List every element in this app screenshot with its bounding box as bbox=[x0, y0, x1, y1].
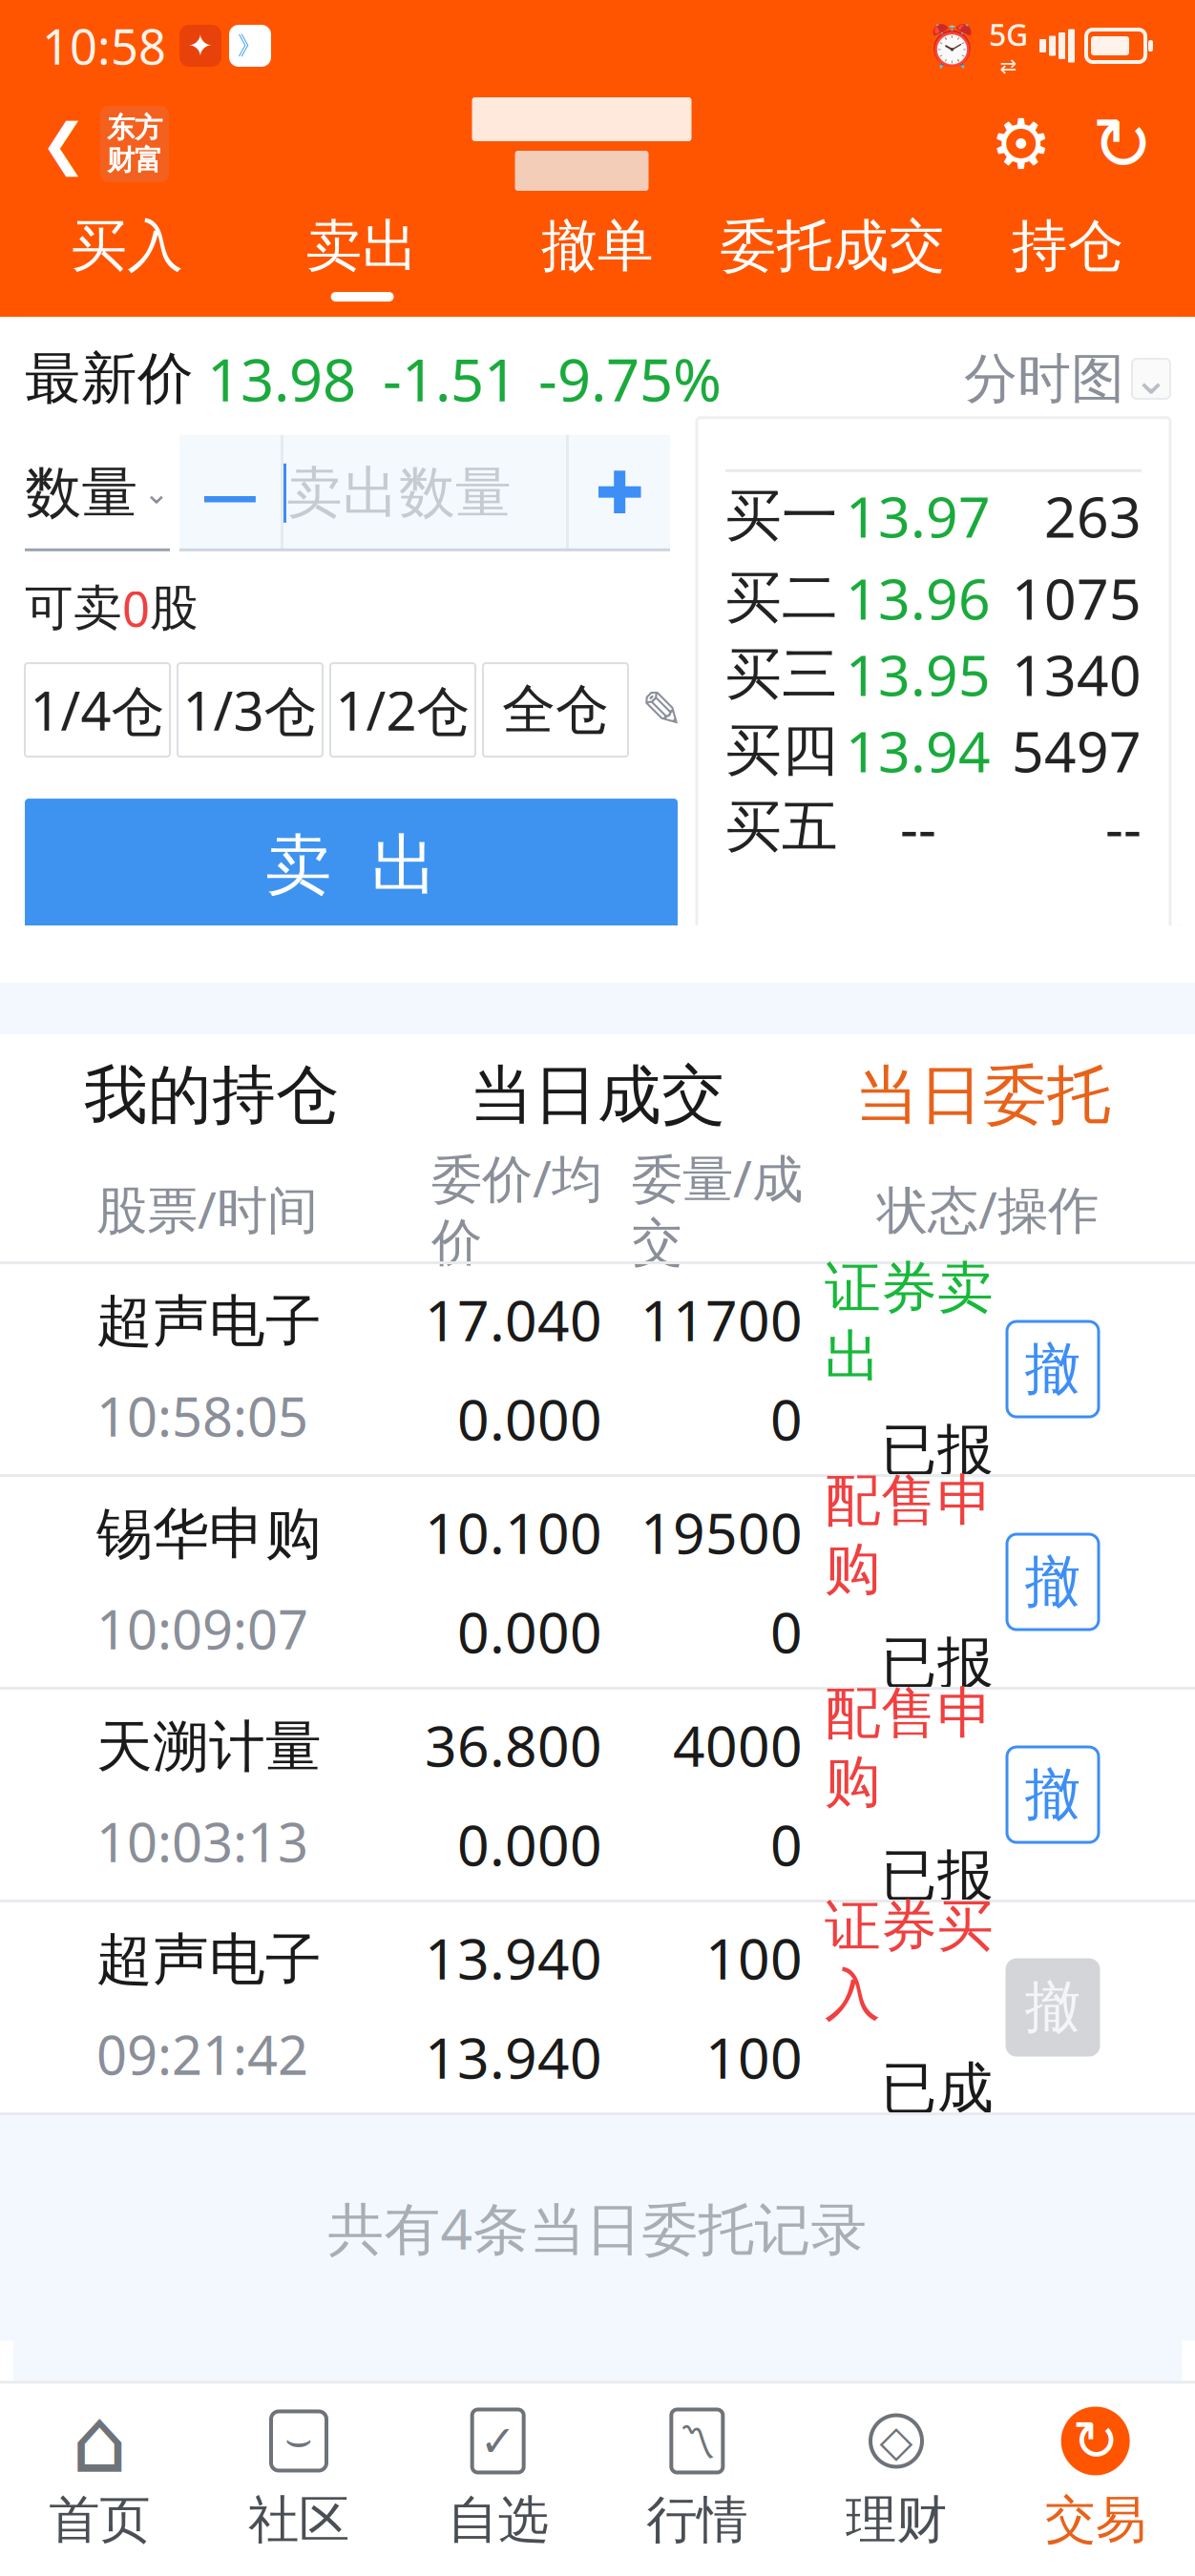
staticText: 10:58 bbox=[42, 14, 166, 78]
staticText: 天溯计量 bbox=[96, 1712, 322, 1781]
button[interactable]: 卖出 bbox=[245, 197, 480, 302]
staticText: 1075 bbox=[1012, 561, 1142, 635]
staticText: 社区 bbox=[248, 2489, 349, 2551]
staticText: 东方 bbox=[107, 111, 162, 145]
staticText: -- bbox=[900, 790, 936, 864]
button[interactable]: 数量 bbox=[25, 435, 170, 551]
staticText: 撤 bbox=[1025, 1335, 1081, 1404]
staticText: 财富 bbox=[107, 143, 162, 177]
button[interactable]: 卖 出 bbox=[25, 799, 678, 932]
staticText: 自选 bbox=[447, 2489, 549, 2551]
button[interactable]: ⌣ bbox=[199, 2384, 398, 2576]
button[interactable]: 设置 bbox=[987, 92, 1056, 197]
staticText: 我的持仓 bbox=[84, 1056, 340, 1134]
staticText: 分时图 bbox=[964, 346, 1124, 412]
staticText: 13.94 bbox=[846, 713, 991, 788]
button[interactable]: 卖出数量 bbox=[283, 435, 566, 551]
button[interactable]: 撤 bbox=[1007, 1960, 1099, 2055]
staticText: 行情 bbox=[646, 2489, 748, 2551]
staticText: 13.96 bbox=[846, 561, 991, 635]
button[interactable]: 撤单 bbox=[480, 197, 715, 302]
staticText: 配售申购 bbox=[825, 1466, 994, 1604]
staticText: 买五 bbox=[725, 793, 838, 861]
staticText: ✎ bbox=[641, 681, 684, 739]
button[interactable]: 撤 bbox=[1007, 1321, 1099, 1417]
button[interactable]: 买入 bbox=[10, 197, 245, 302]
button[interactable]: 委托成交 bbox=[715, 197, 950, 302]
staticText: -- bbox=[1105, 790, 1142, 864]
staticText: 已成 bbox=[881, 2054, 994, 2123]
button[interactable]: ↻ bbox=[996, 2384, 1195, 2576]
staticText: 0.000 bbox=[457, 1807, 602, 1881]
staticText: ⌄ bbox=[144, 476, 169, 510]
button[interactable]: 当日委托 bbox=[790, 1034, 1176, 1156]
button[interactable]: 我的持仓 bbox=[19, 1034, 405, 1156]
button[interactable]: 减少数量 bbox=[179, 435, 281, 551]
staticText: 0 bbox=[770, 1807, 803, 1881]
staticText: 10.100 bbox=[425, 1495, 602, 1570]
staticText: 撤单 bbox=[541, 212, 654, 281]
staticText: 1/4仓 bbox=[30, 674, 165, 745]
staticText: 当日委托 bbox=[855, 1056, 1111, 1134]
button[interactable]: 撤 bbox=[1007, 1747, 1099, 1842]
staticText: 买一 bbox=[725, 482, 838, 550]
staticText: 19500 bbox=[640, 1495, 803, 1570]
staticText: -9.75% bbox=[538, 340, 722, 418]
staticText: 10:09:07 bbox=[96, 1593, 308, 1664]
staticText: 证券买入 bbox=[825, 1892, 994, 2029]
staticText: ✦ bbox=[188, 28, 213, 63]
staticText: ⌣ bbox=[284, 2420, 313, 2462]
staticText: 已报 bbox=[881, 1841, 994, 1910]
staticText: 委托成交 bbox=[720, 212, 945, 281]
button[interactable]: ⌂ bbox=[0, 2384, 199, 2576]
staticText: 4000 bbox=[673, 1708, 803, 1782]
button[interactable]: 1/3仓 bbox=[178, 663, 323, 757]
staticText: 证券卖出 bbox=[825, 1254, 994, 1391]
staticText: ◇ bbox=[880, 2416, 913, 2466]
staticText: 委价/均价 bbox=[431, 1144, 602, 1274]
button[interactable]: 〽 bbox=[597, 2384, 797, 2576]
button[interactable]: 分时图 bbox=[964, 346, 1170, 412]
button[interactable]: 1/2仓 bbox=[330, 663, 475, 757]
staticText: 股票/时间 bbox=[96, 1175, 318, 1243]
staticText: 1340 bbox=[1012, 637, 1142, 711]
staticText: 100 bbox=[705, 1921, 803, 1995]
staticText: 10:03:13 bbox=[96, 1806, 308, 1877]
staticText: 13.98 bbox=[207, 340, 356, 418]
staticText: 当日成交 bbox=[470, 1056, 725, 1134]
staticText: 1/2仓 bbox=[335, 674, 470, 745]
button[interactable]: 返回 东方财富 bbox=[32, 92, 177, 197]
staticText: 撤 bbox=[1025, 1973, 1081, 2042]
button[interactable]: ✓ bbox=[398, 2384, 597, 2576]
staticText: 可卖 bbox=[25, 578, 122, 638]
staticText: 状态/操作 bbox=[877, 1175, 1099, 1243]
staticText: 0 bbox=[770, 1594, 803, 1669]
button[interactable]: 当日成交 bbox=[405, 1034, 790, 1156]
staticText: 买三 bbox=[725, 640, 838, 709]
button[interactable]: 编辑仓位 bbox=[636, 663, 689, 757]
button[interactable]: ◇ bbox=[797, 2384, 996, 2576]
staticText: 5G bbox=[989, 14, 1028, 54]
staticText: 10:58:05 bbox=[96, 1380, 308, 1451]
staticText: 〽 bbox=[678, 2422, 716, 2460]
button[interactable]: 持仓 bbox=[950, 197, 1185, 302]
staticText: ⏰ bbox=[927, 23, 977, 69]
staticText: 持仓 bbox=[1012, 212, 1124, 281]
staticText: 数量 bbox=[25, 459, 138, 528]
staticText: 超声电子 bbox=[96, 1925, 322, 1994]
staticText: 撤 bbox=[1025, 1548, 1081, 1616]
staticText: 13.95 bbox=[846, 637, 991, 711]
staticText: ⌂ bbox=[71, 2390, 128, 2491]
staticText: -1.51 bbox=[383, 340, 517, 418]
staticText: 交易 bbox=[1045, 2489, 1146, 2551]
button[interactable]: 撤 bbox=[1007, 1534, 1099, 1630]
staticText: 1/3仓 bbox=[183, 674, 317, 745]
button[interactable]: 增加数量 bbox=[569, 435, 670, 551]
staticText: ↻ bbox=[1091, 102, 1153, 186]
staticText: 0 bbox=[122, 576, 150, 640]
staticText: 买四 bbox=[725, 716, 838, 785]
button[interactable]: 刷新 bbox=[1088, 92, 1157, 197]
button[interactable]: 1/4仓 bbox=[25, 663, 170, 757]
staticText: 36.800 bbox=[425, 1708, 602, 1782]
button[interactable]: 全仓 bbox=[483, 663, 628, 757]
